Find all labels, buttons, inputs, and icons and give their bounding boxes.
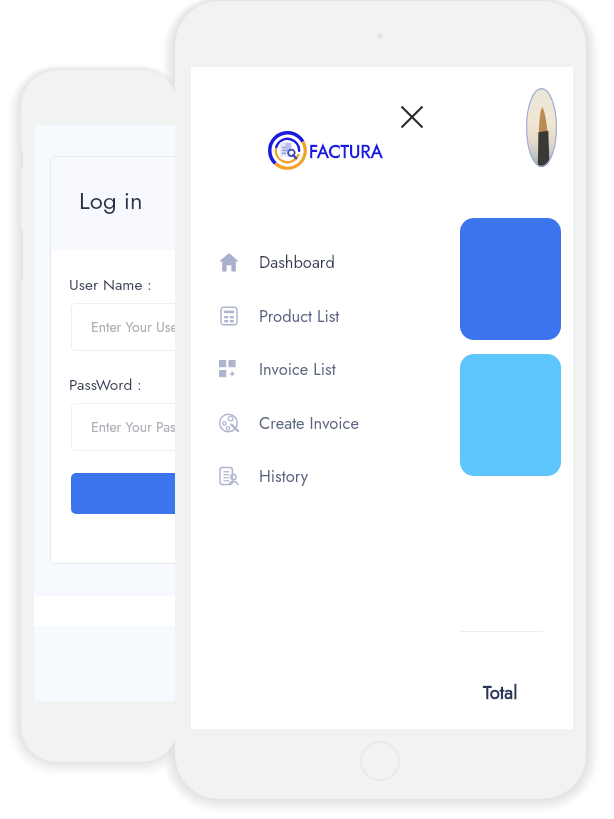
button[interactable] (460, 354, 561, 476)
button[interactable] (460, 218, 561, 340)
staticText: Enter Your Password (91, 417, 178, 437)
staticText: FACTURA (309, 139, 383, 165)
staticText: PassWord : (69, 373, 142, 395)
staticText: Product List (259, 304, 340, 328)
button[interactable]: Product List (191, 296, 460, 336)
button[interactable]: Create Invoice (191, 403, 460, 443)
button[interactable]: Enter Your Username (71, 303, 178, 351)
staticText: Create Invoice (259, 411, 359, 435)
staticText: Total (483, 679, 518, 706)
button[interactable]: Profile (526, 88, 557, 167)
button[interactable] (71, 473, 178, 514)
button[interactable]: Enter Your Password (71, 403, 178, 451)
button[interactable]: Dashboard (191, 242, 460, 282)
button[interactable]: History (191, 456, 460, 496)
staticText: Enter Your Username (91, 317, 178, 337)
staticText: History (259, 464, 309, 488)
button[interactable]: Close navigation drawer (398, 103, 426, 131)
staticText: User Name : (69, 273, 152, 295)
staticText: Invoice List (259, 357, 336, 381)
button[interactable]: Invoice List (191, 349, 460, 389)
staticText: Log in (79, 183, 143, 218)
staticText: Dashboard (259, 250, 335, 274)
